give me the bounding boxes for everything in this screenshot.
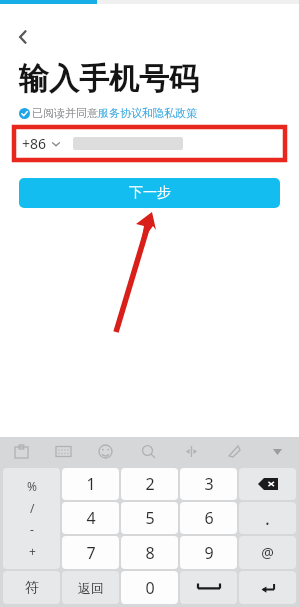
button[interactable]: 8	[121, 536, 178, 569]
staticText: +	[29, 543, 36, 559]
staticText: 2	[145, 473, 155, 495]
button[interactable]: 已阅读并同意	[19, 106, 197, 120]
button[interactable]: %	[3, 468, 60, 569]
staticText: 7	[86, 542, 96, 564]
button[interactable]: 3	[180, 468, 237, 500]
button[interactable]: Enter	[239, 571, 296, 604]
button[interactable]: Move cursor	[170, 437, 213, 465]
button[interactable]: Backspace	[239, 468, 296, 500]
button[interactable]: 0	[121, 571, 178, 604]
staticText: +86	[22, 134, 47, 153]
button[interactable]: Keyboard settings	[42, 437, 84, 465]
staticText: -	[30, 521, 34, 537]
button[interactable]: .	[239, 502, 296, 534]
button[interactable]: Search	[127, 437, 170, 465]
button[interactable]: 下一步	[19, 178, 280, 208]
button[interactable]: 符	[3, 571, 60, 604]
button[interactable]: Emoji	[84, 437, 127, 465]
staticText: 8	[145, 542, 155, 564]
staticText: 0	[145, 577, 155, 599]
staticText: 符	[25, 579, 39, 597]
staticText: 下一步	[129, 184, 171, 202]
staticText: 输入手机号码	[19, 60, 199, 98]
button[interactable]: 4	[62, 502, 119, 534]
button[interactable]: 返回	[62, 571, 119, 604]
button[interactable]: Hide keyboard	[256, 437, 299, 465]
staticText: 3	[204, 473, 214, 495]
staticText: /	[30, 500, 35, 516]
button[interactable]: Eraser	[213, 437, 256, 465]
staticText: 服务协议和隐私政策	[98, 106, 197, 120]
button[interactable]: @	[239, 536, 296, 569]
staticText: 9	[204, 542, 214, 564]
staticText: 4	[86, 507, 96, 529]
staticText: @	[261, 543, 274, 562]
button[interactable]: Clipboard	[0, 437, 42, 465]
staticText: 1	[86, 473, 96, 495]
button[interactable]: 5	[121, 502, 178, 534]
staticText: .	[265, 506, 270, 531]
button[interactable]: 6	[180, 502, 237, 534]
staticText: %	[27, 478, 37, 494]
button[interactable]: +86	[14, 127, 285, 160]
button[interactable]: 1	[62, 468, 119, 500]
staticText: 返回	[78, 580, 104, 596]
button[interactable]: Space	[180, 571, 237, 604]
staticText: 6	[204, 507, 214, 529]
staticText: 5	[145, 507, 155, 529]
button[interactable]: 7	[62, 536, 119, 569]
button[interactable]: 9	[180, 536, 237, 569]
staticText: 已阅读并同意	[32, 106, 98, 120]
button[interactable]: Back	[6, 20, 40, 54]
button[interactable]: 2	[121, 468, 178, 500]
